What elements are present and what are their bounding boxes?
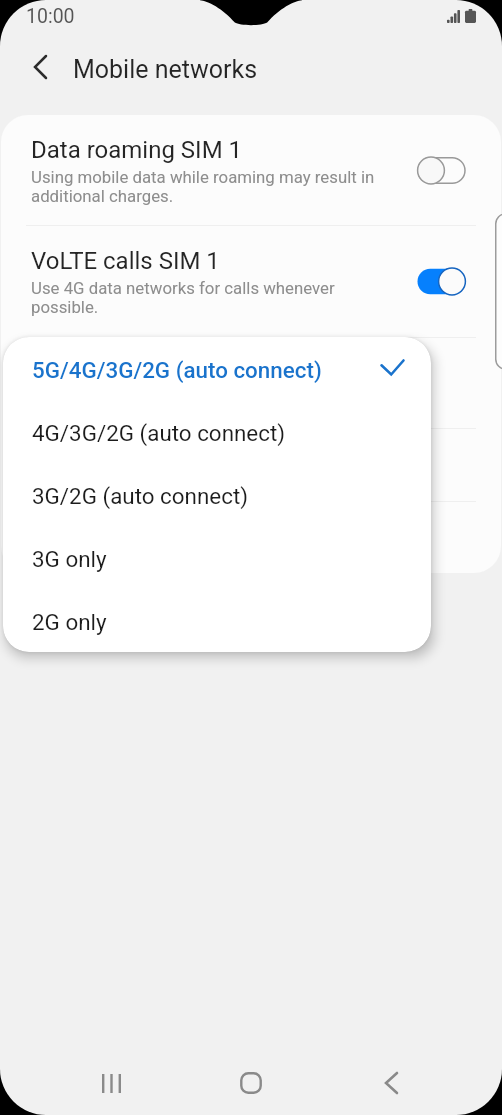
button[interactable]: Access Point Names — [1, 429, 501, 501]
button[interactable]: 5G/4G/3G/2G (auto connect) — [3, 337, 431, 400]
staticText: 10:00 — [26, 5, 75, 28]
staticText: 4G/3G/2G (auto connect) — [32, 420, 286, 446]
staticText: Using mobile data while roaming may resu… — [31, 167, 375, 206]
staticText: Network mode SIM 1 — [31, 359, 255, 387]
button[interactable]: 3G/2G (auto connect) — [3, 463, 431, 526]
button[interactable]: 2G only — [3, 589, 431, 652]
staticText: 3G only — [32, 546, 107, 572]
staticText: 5G/4G/3G/2G (auto connect) — [32, 357, 322, 383]
staticText: Data roaming SIM 1 — [31, 136, 243, 164]
button[interactable]: 3G only — [3, 526, 431, 589]
button[interactable]: 4G/3G/2G (auto connect) — [3, 400, 431, 463]
button[interactable]: Recent apps — [71, 1043, 151, 1115]
button[interactable]: Data roaming SIM 1 — [1, 115, 501, 225]
staticText: Use 4G data networks for calls whenever … — [31, 278, 335, 317]
button[interactable]: Navigate up — [13, 35, 68, 98]
staticText: 2G only — [32, 609, 107, 635]
button[interactable]: Switch off — [417, 156, 466, 185]
button[interactable]: Home — [211, 1043, 291, 1115]
button[interactable]: VoLTE calls SIM 1 — [1, 226, 501, 337]
button[interactable]: Network mode SIM 1 — [1, 338, 501, 428]
button[interactable]: Back — [351, 1043, 431, 1115]
staticText: Mobile networks — [73, 55, 258, 84]
staticText: VoLTE calls SIM 1 — [31, 247, 220, 275]
button[interactable]: Switch on — [417, 267, 466, 296]
button[interactable]: Network operators — [1, 502, 501, 573]
staticText: Network operators — [31, 525, 230, 553]
staticText: 3G/2G (auto connect) — [32, 483, 249, 509]
